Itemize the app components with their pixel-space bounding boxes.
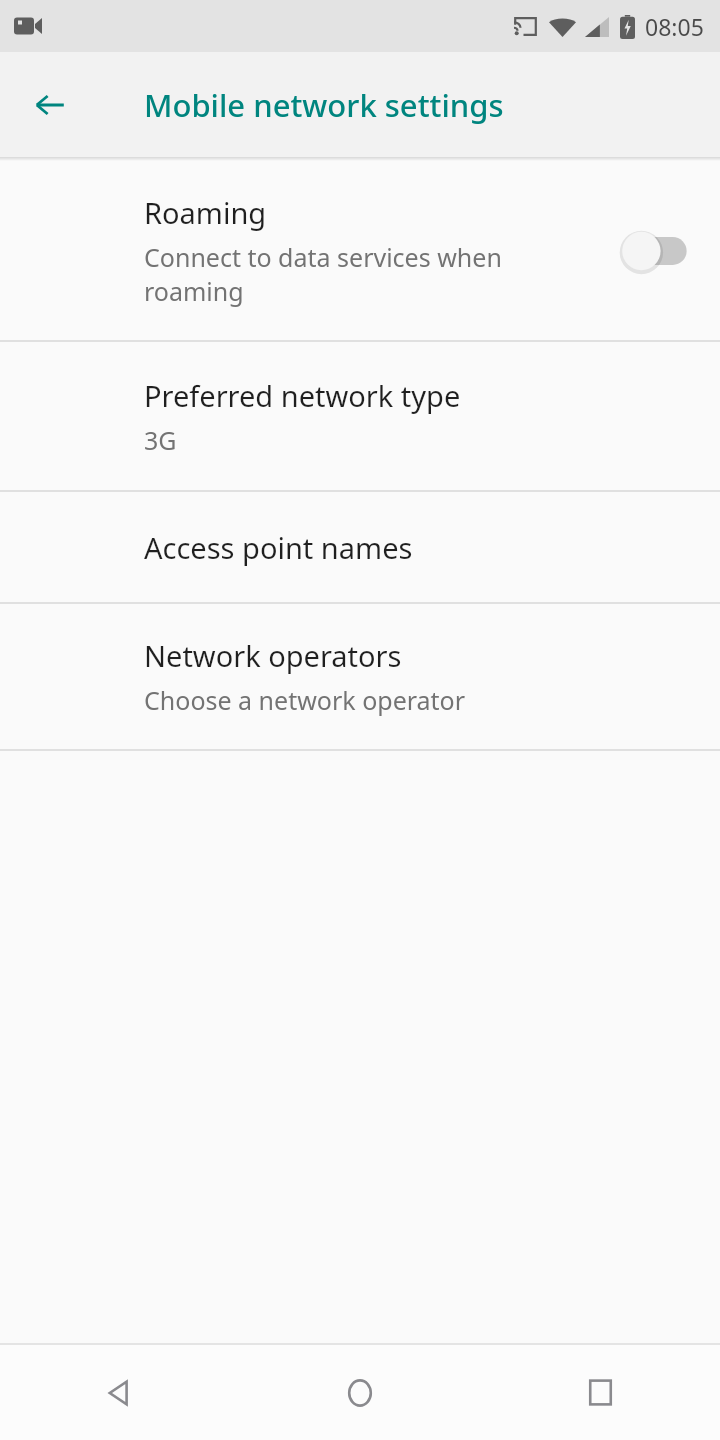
button[interactable]: Access point names	[0, 492, 720, 602]
staticText: 08:05	[645, 11, 704, 42]
staticText: Choose a network operator	[144, 683, 544, 717]
button[interactable]: Roaming	[0, 161, 720, 340]
button[interactable]: Recent apps	[480, 1345, 720, 1440]
staticText: Roaming	[144, 193, 267, 232]
button[interactable]: Network operators	[0, 604, 720, 749]
staticText: Access point names	[144, 528, 413, 567]
button[interactable]: Roaming toggle	[618, 227, 696, 275]
staticText: Connect to data services when roaming	[144, 240, 544, 308]
staticText: Network operators	[144, 636, 402, 675]
staticText: 3G	[144, 423, 544, 457]
staticText: Mobile network settings	[144, 84, 504, 126]
button[interactable]: Home	[240, 1345, 480, 1440]
button[interactable]: Preferred network type	[0, 342, 720, 490]
staticText: Preferred network type	[144, 376, 461, 415]
button[interactable]: Back	[22, 77, 78, 133]
button[interactable]: Back	[0, 1345, 240, 1440]
